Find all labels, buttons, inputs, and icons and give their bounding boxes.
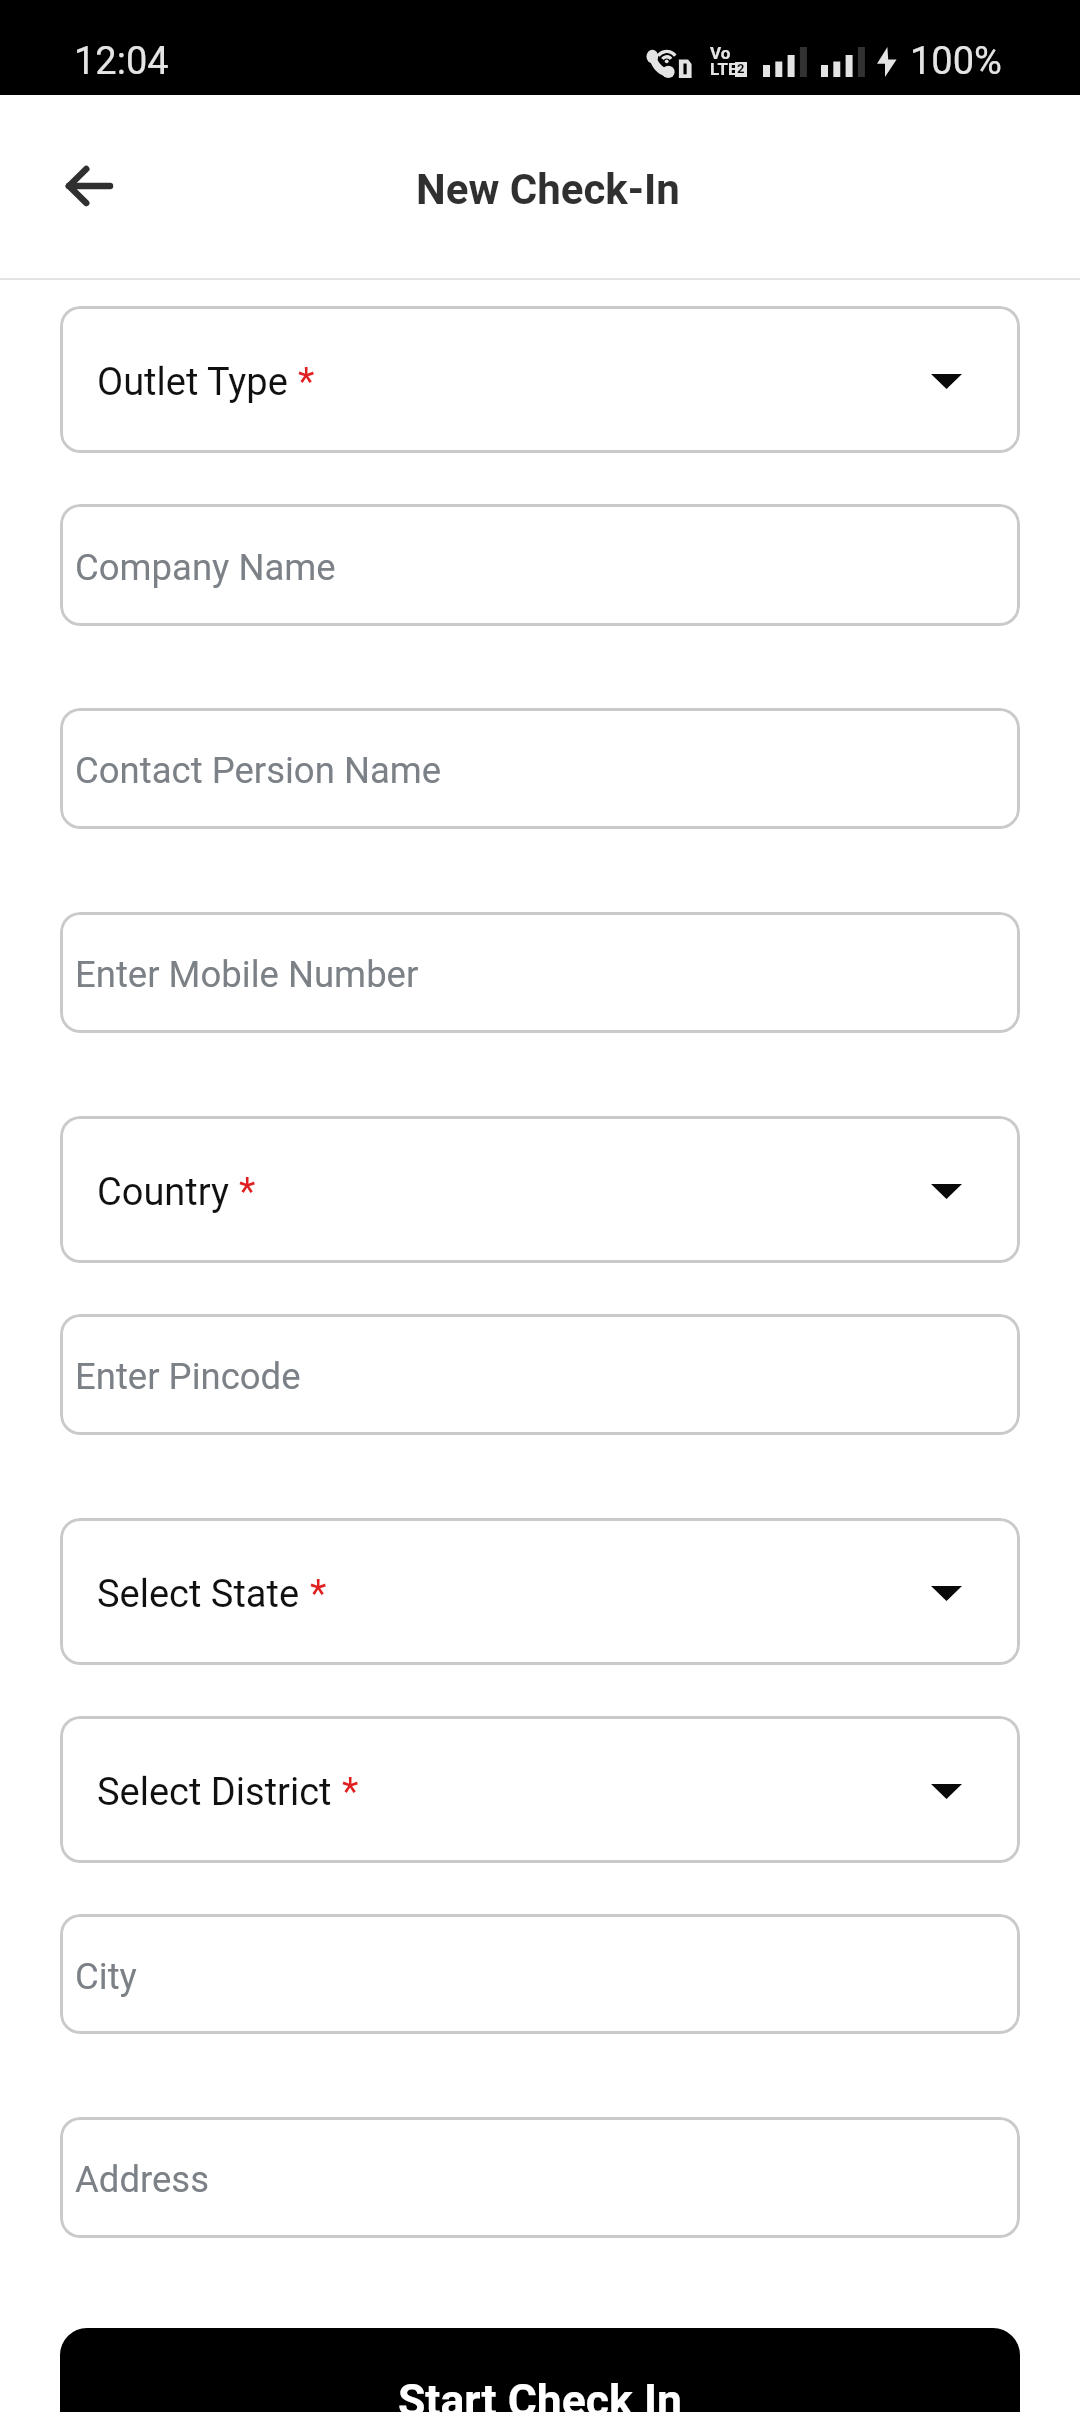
staticText: Select State xyxy=(97,1572,300,1617)
button[interactable]: Outlet Type xyxy=(60,306,1020,453)
staticText: * xyxy=(239,1170,256,1215)
button[interactable]: Enter Mobile Number xyxy=(60,912,1020,1033)
button[interactable]: Select District xyxy=(60,1716,1020,1863)
button[interactable]: Select State xyxy=(60,1518,1020,1665)
button[interactable]: Address xyxy=(60,2117,1020,2238)
staticText: LTE xyxy=(710,59,738,79)
button[interactable]: Contact Persion Name xyxy=(60,708,1020,829)
button[interactable]: Company Name xyxy=(60,504,1020,626)
staticText: Contact Persion Name xyxy=(75,749,442,792)
staticText: * xyxy=(310,1572,327,1617)
staticText: 2 xyxy=(737,61,745,76)
staticText: Enter Pincode xyxy=(75,1355,301,1398)
staticText: New Check-In xyxy=(416,165,680,214)
staticText: * xyxy=(298,360,315,405)
staticText: Enter Mobile Number xyxy=(75,953,419,996)
staticText: Select District xyxy=(97,1770,332,1815)
button[interactable]: City xyxy=(60,1914,1020,2034)
staticText: Outlet Type xyxy=(97,360,288,405)
button[interactable]: Back xyxy=(40,137,138,235)
staticText: 100% xyxy=(910,39,1002,84)
staticText: Start Check In xyxy=(398,2375,682,2412)
staticText: Country xyxy=(97,1170,229,1215)
staticText: Company Name xyxy=(75,546,336,589)
staticText: 12:04 xyxy=(74,39,169,84)
staticText: * xyxy=(342,1770,359,1815)
button[interactable]: Country xyxy=(60,1116,1020,1263)
staticText: City xyxy=(75,1955,137,1998)
button[interactable]: Enter Pincode xyxy=(60,1314,1020,1435)
button[interactable]: Start Check In xyxy=(60,2328,1020,2412)
staticText: Address xyxy=(75,2158,210,2201)
staticText: Vo xyxy=(710,43,731,63)
